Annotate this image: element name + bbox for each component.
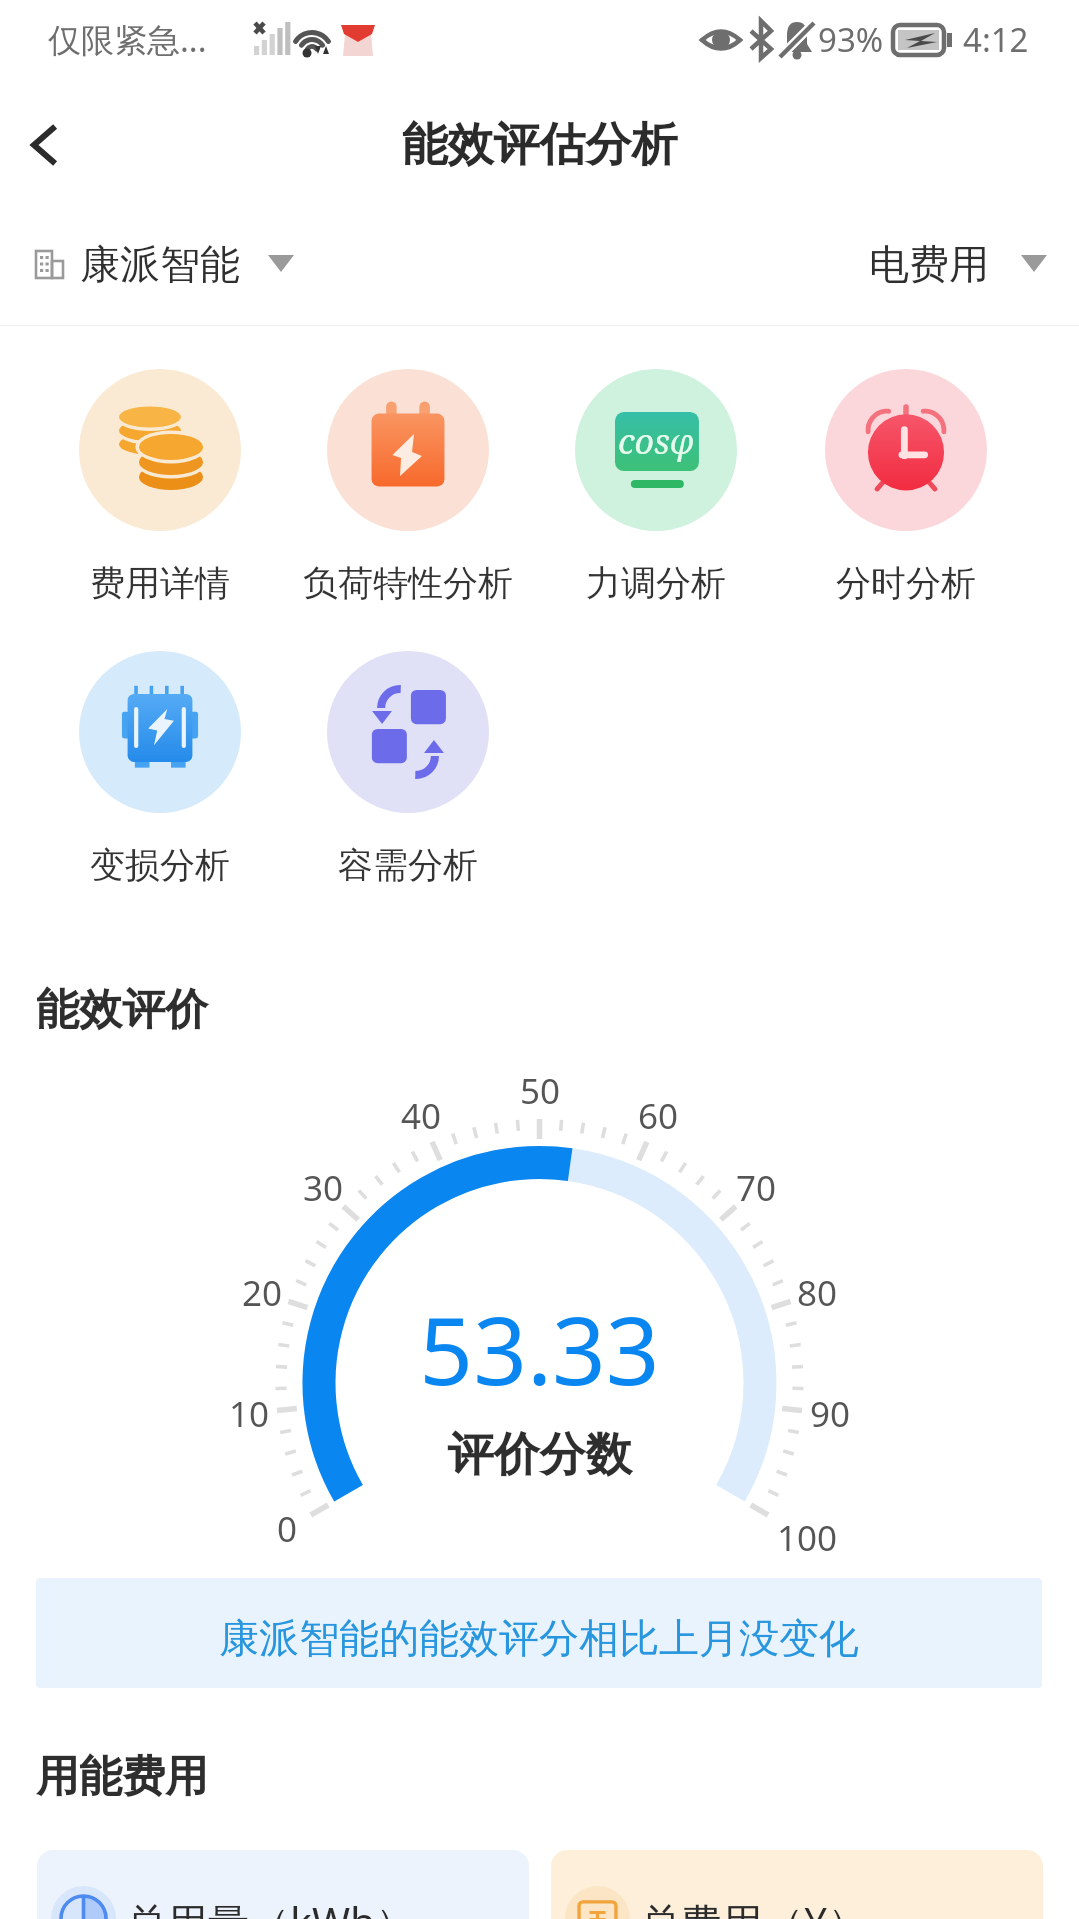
button[interactable]: 变损分析: [36, 651, 284, 887]
button[interactable]: 电费用: [869, 216, 1047, 312]
button[interactable]: 康派智能的能效评分相比上月没变化: [36, 1578, 1042, 1688]
staticText: 40: [401, 1092, 442, 1140]
button[interactable]: 费用详情: [36, 369, 284, 605]
staticText: 4:12: [963, 17, 1029, 62]
button[interactable]: 康派智能: [36, 216, 294, 312]
staticText: 60: [638, 1092, 679, 1140]
staticText: 评价分数: [0, 1426, 1079, 1484]
button[interactable]: cosφ: [532, 369, 780, 605]
staticText: 变损分析: [90, 843, 230, 887]
staticText: 50: [520, 1067, 561, 1115]
button[interactable]: Back: [0, 95, 95, 195]
staticText: 康派智能的能效评分相比上月没变化: [219, 1613, 859, 1663]
staticText: 30: [303, 1164, 344, 1212]
button[interactable]: 容需分析: [284, 651, 532, 887]
staticText: 53.33: [0, 1285, 1079, 1413]
staticText: 力调分析: [586, 561, 726, 605]
button[interactable]: 总用量（kWh）: [37, 1850, 529, 1919]
staticText: 容需分析: [338, 843, 478, 887]
staticText: 总费用（¥）: [640, 1894, 869, 1919]
staticText: 能效评估分析: [0, 116, 1079, 174]
staticText: 0: [277, 1505, 298, 1553]
staticText: 负荷特性分析: [303, 561, 513, 605]
staticText: 70: [736, 1164, 777, 1212]
button[interactable]: 负荷特性分析: [284, 369, 532, 605]
staticText: 电费用: [869, 239, 989, 289]
staticText: 90: [810, 1390, 851, 1438]
button[interactable]: 分时分析: [782, 369, 1030, 605]
staticText: cosφ: [618, 418, 695, 464]
staticText: 20: [242, 1269, 283, 1317]
staticText: 仅限紧急...: [48, 17, 207, 62]
staticText: 康派智能: [80, 239, 240, 289]
staticText: 80: [797, 1269, 838, 1317]
staticText: 10: [229, 1390, 270, 1438]
staticText: 总用量（kWh）: [126, 1894, 417, 1919]
staticText: 分时分析: [836, 561, 976, 605]
staticText: 100: [777, 1514, 838, 1562]
button[interactable]: 总费用（¥）: [551, 1850, 1043, 1919]
staticText: 能效评价: [36, 983, 208, 1037]
staticText: 93%: [818, 17, 884, 62]
staticText: 费用详情: [90, 561, 230, 605]
staticText: 用能费用: [36, 1750, 208, 1804]
